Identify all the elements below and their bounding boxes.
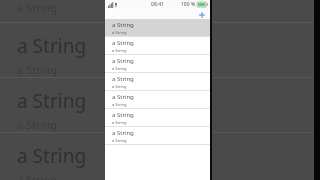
staticText: a String: [112, 111, 134, 119]
button[interactable]: a String: [105, 37, 210, 54]
button[interactable]: a String: [105, 19, 210, 36]
staticText: a String: [17, 143, 87, 169]
staticText: 08:41: [151, 1, 164, 8]
button[interactable]: a String: [0, 78, 320, 132]
button[interactable]: Add: [197, 10, 206, 19]
staticText: a String: [112, 102, 127, 107]
staticText: a String: [112, 66, 127, 71]
staticText: a String: [17, 88, 87, 114]
staticText: a String: [17, 117, 57, 132]
staticText: a String: [17, 0, 57, 15]
staticText: 100 %: [181, 1, 196, 8]
staticText: a String: [112, 21, 134, 29]
staticText: a String: [17, 33, 87, 59]
button[interactable]: a String: [105, 73, 210, 90]
staticText: a String: [112, 138, 127, 143]
button[interactable]: a String: [0, 133, 320, 180]
button[interactable]: a String: [105, 55, 210, 72]
staticText: a String: [112, 75, 134, 83]
button[interactable]: a String: [0, 23, 320, 77]
staticText: a String: [112, 57, 134, 65]
staticText: a String: [112, 93, 134, 101]
staticText: a String: [112, 39, 134, 47]
staticText: a String: [112, 30, 127, 35]
staticText: a String: [17, 62, 57, 77]
staticText: a String: [17, 172, 57, 180]
staticText: a String: [112, 84, 127, 89]
button[interactable]: a String: [105, 91, 210, 108]
button[interactable]: a String: [105, 109, 210, 126]
staticText: a String: [112, 120, 127, 125]
staticText: a String: [112, 48, 127, 53]
button[interactable]: a String: [105, 127, 210, 144]
staticText: a String: [112, 129, 134, 137]
